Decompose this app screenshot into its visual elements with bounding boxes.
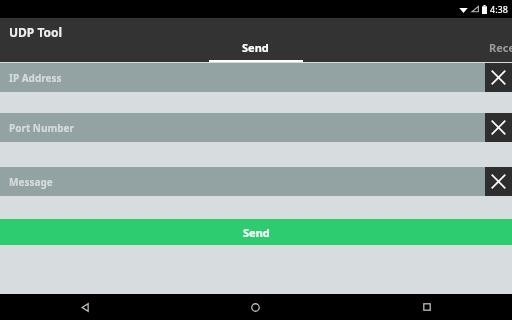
staticText: 4:38 bbox=[490, 3, 508, 15]
button[interactable]: Send bbox=[170, 40, 341, 62]
button[interactable]: Message bbox=[0, 167, 485, 196]
button[interactable]: Home bbox=[170, 294, 341, 320]
button[interactable]: Clear Message bbox=[485, 167, 512, 196]
button[interactable]: Clear IP Address bbox=[485, 63, 512, 92]
staticText: IP Address bbox=[9, 71, 62, 85]
button[interactable]: Port Number bbox=[0, 113, 485, 142]
button[interactable]: Recents bbox=[341, 294, 512, 320]
staticText: Send bbox=[242, 40, 269, 55]
button[interactable]: Back bbox=[0, 294, 170, 320]
button[interactable]: Clear Port Number bbox=[485, 113, 512, 142]
staticText: Send bbox=[243, 225, 270, 240]
staticText: UDP Tool bbox=[9, 24, 63, 40]
button[interactable]: Send bbox=[0, 219, 512, 245]
staticText: Message bbox=[9, 175, 53, 189]
button[interactable]: Receive bbox=[341, 40, 512, 62]
button[interactable]: IP Address bbox=[0, 63, 485, 92]
staticText: Port Number bbox=[9, 121, 75, 135]
staticText: Receive bbox=[489, 40, 512, 55]
